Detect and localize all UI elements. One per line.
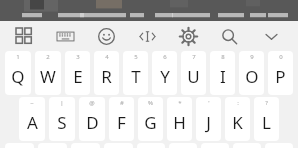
staticText: S [57, 111, 67, 134]
staticText: R [101, 65, 112, 88]
button[interactable]: 8 [210, 51, 235, 95]
staticText: 5 [134, 53, 138, 61]
button[interactable]: 4 [94, 51, 119, 95]
button[interactable]: 3 [65, 51, 90, 95]
button[interactable]: : [225, 97, 250, 141]
button[interactable]: ? [254, 97, 279, 141]
button[interactable]: ' [196, 97, 221, 141]
button[interactable]: Search [215, 22, 243, 50]
staticText: A [27, 111, 38, 134]
staticText: W [40, 65, 56, 88]
staticText: G [144, 111, 157, 134]
staticText: 2 [46, 53, 50, 61]
staticText: # [120, 99, 124, 107]
button[interactable]: # [109, 97, 134, 141]
staticText: T [131, 65, 141, 88]
button[interactable]: Collapse toolbar [256, 21, 286, 51]
staticText: 4 [105, 53, 109, 61]
button[interactable]: % [138, 97, 163, 141]
button[interactable]: 6 [152, 51, 177, 95]
button[interactable]: 7 [181, 51, 206, 95]
button[interactable]: | [49, 97, 75, 141]
staticText: % [148, 99, 153, 107]
staticText: * [178, 99, 182, 107]
button[interactable]: 5 [123, 51, 148, 95]
staticText: D [86, 111, 99, 134]
staticText: @ [89, 99, 95, 107]
staticText: Y [160, 65, 170, 88]
button[interactable]: 0 [268, 51, 293, 95]
button[interactable]: 2 [35, 51, 61, 95]
staticText: | [60, 99, 64, 107]
button[interactable]: Keyboard layout [51, 22, 79, 50]
staticText: H [173, 111, 186, 134]
staticText: ? [265, 99, 268, 107]
staticText: 6 [163, 53, 167, 61]
staticText: 1 [16, 53, 20, 61]
button[interactable]: @ [79, 97, 105, 141]
staticText: 3 [76, 53, 80, 61]
button[interactable]: Text editing [133, 22, 161, 50]
button[interactable]: * [167, 97, 192, 141]
staticText: Q [11, 65, 25, 88]
staticText: 7 [192, 53, 196, 61]
staticText: P [275, 65, 286, 88]
staticText: F [117, 111, 126, 134]
button[interactable]: 1 [5, 51, 31, 95]
staticText: ~ [30, 99, 34, 107]
staticText: 0 [279, 53, 283, 61]
staticText: U [187, 65, 200, 88]
staticText: K [232, 111, 243, 134]
button[interactable]: Emoji [92, 22, 120, 50]
staticText: 8 [221, 53, 225, 61]
button[interactable]: ~ [19, 97, 45, 141]
staticText: O [245, 65, 259, 88]
staticText: : [237, 99, 239, 107]
button[interactable]: 9 [239, 51, 264, 95]
button[interactable]: Settings [174, 22, 202, 50]
staticText: E [73, 65, 83, 88]
staticText: 9 [250, 53, 254, 61]
staticText: L [262, 111, 271, 134]
staticText: I [220, 65, 226, 88]
button[interactable]: Clipboard [10, 22, 38, 50]
staticText: ' [208, 99, 210, 107]
staticText: J [206, 111, 211, 134]
